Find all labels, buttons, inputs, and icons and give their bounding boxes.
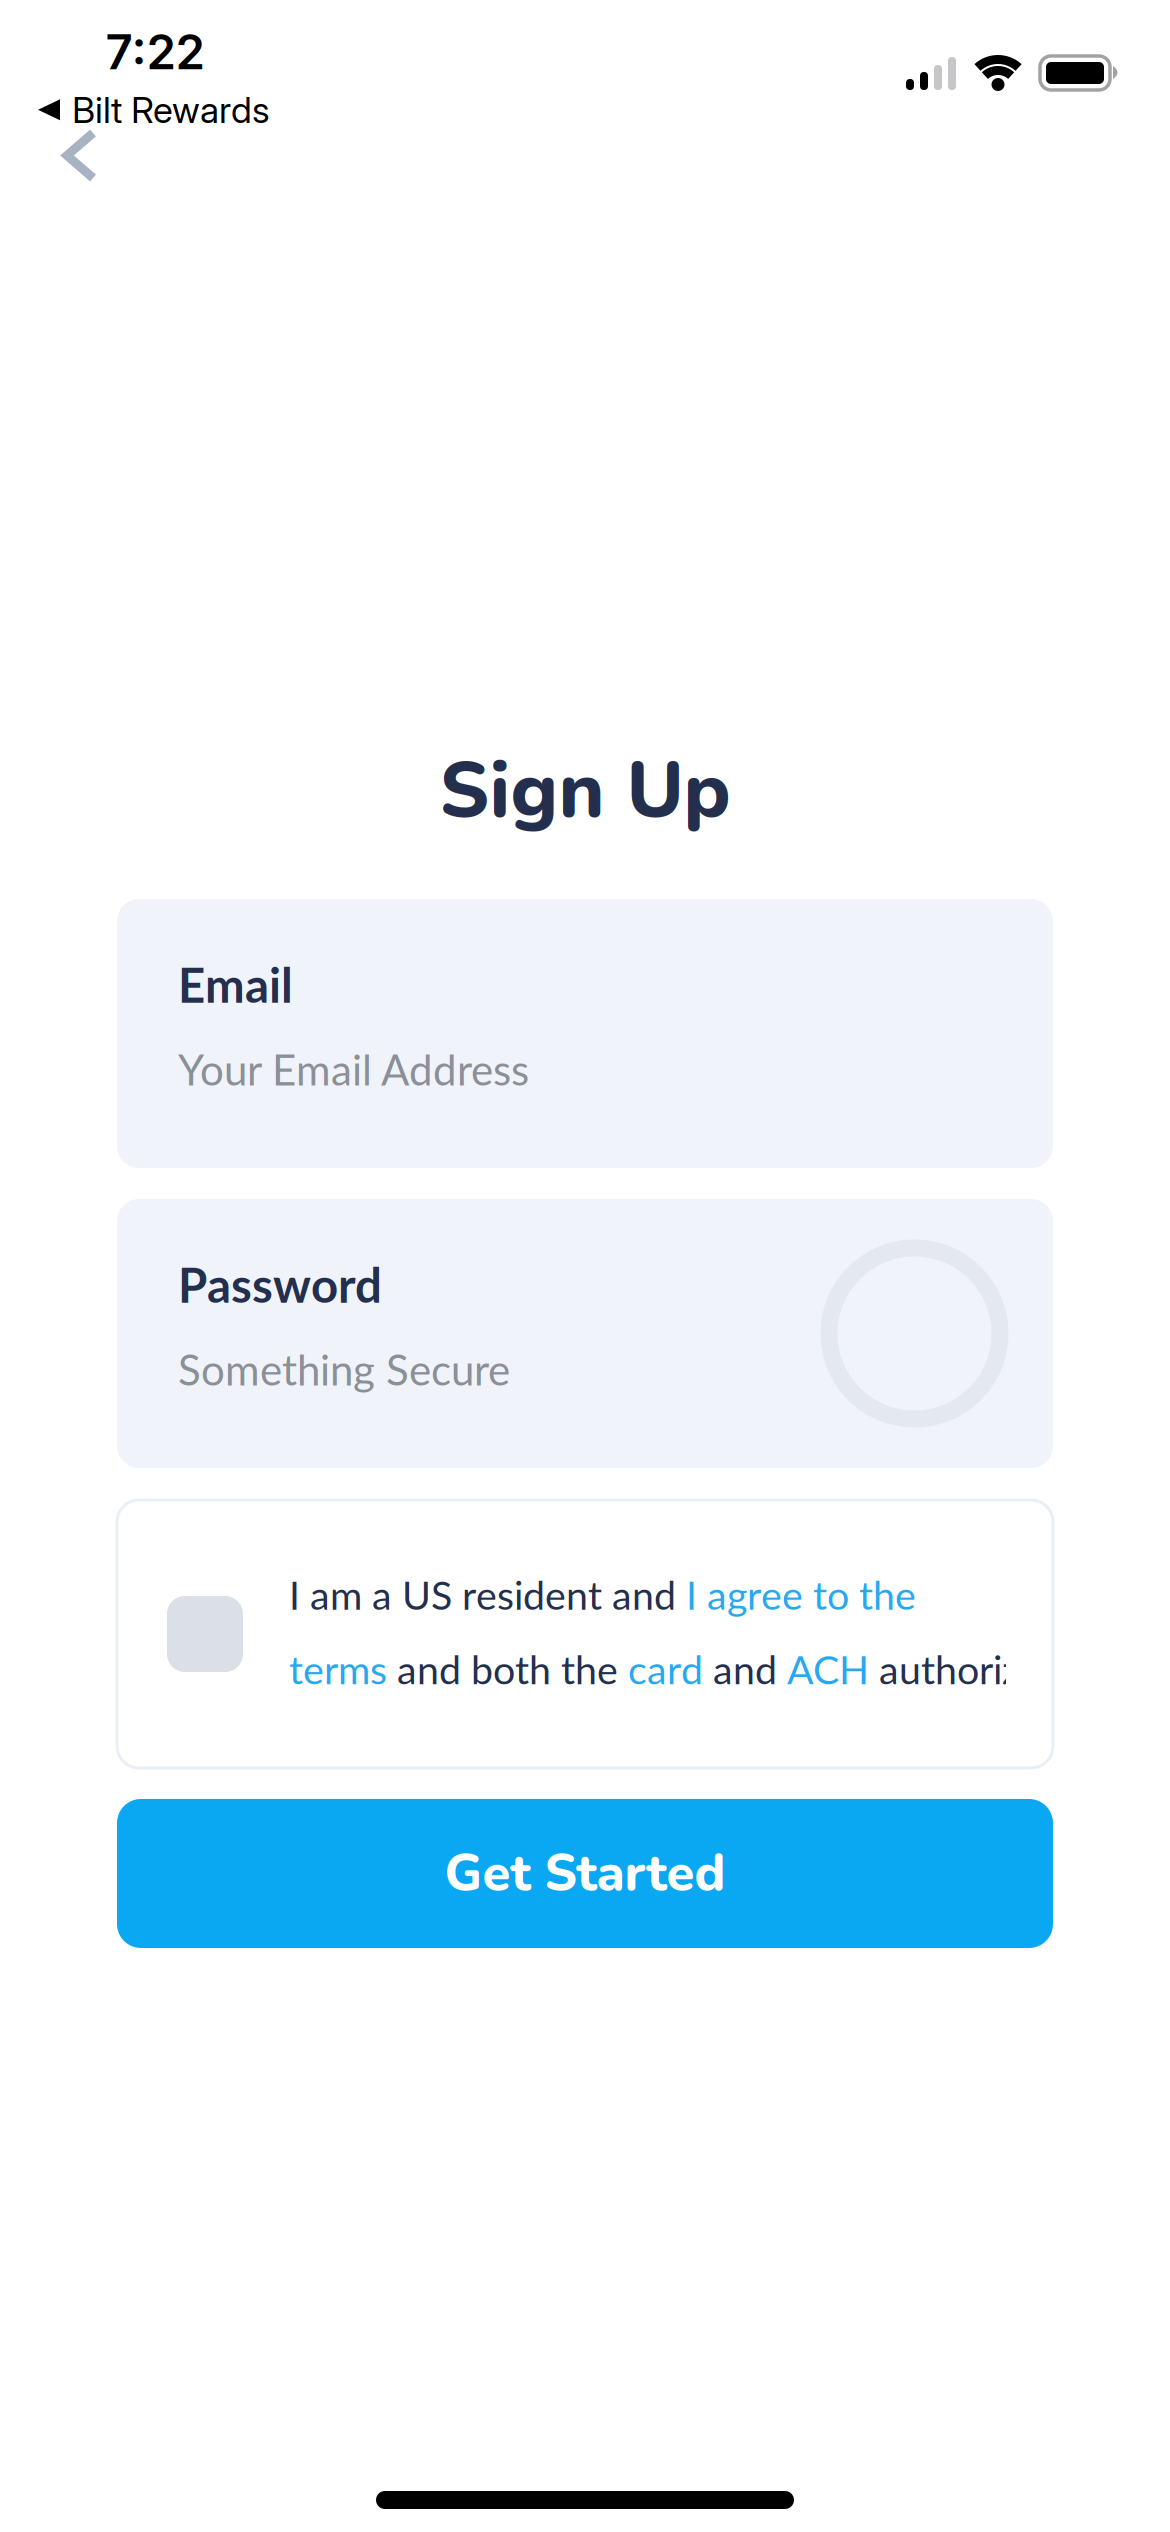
button[interactable]: I agree to the — [686, 1571, 916, 1618]
staticText: Sign Up — [439, 738, 730, 844]
staticText: terms — [289, 1645, 387, 1693]
staticText: Bilt Rewards — [72, 88, 270, 132]
button[interactable]: Email — [117, 899, 1053, 1168]
staticText: ACH — [787, 1645, 869, 1693]
button[interactable]: Back — [53, 119, 111, 193]
staticText: Email — [178, 956, 293, 1013]
button[interactable]: ACH — [787, 1645, 869, 1693]
staticText: and — [703, 1645, 787, 1693]
staticText: Your Email Address — [178, 1044, 529, 1094]
staticText: Get Started — [444, 1839, 725, 1908]
button[interactable]: Bilt Rewards — [38, 88, 270, 132]
staticText: I agree to the — [686, 1571, 916, 1618]
staticText: Password — [178, 1256, 382, 1313]
staticText: and both the — [387, 1645, 628, 1693]
staticText: card — [628, 1645, 703, 1693]
button[interactable]: Password — [117, 1199, 1053, 1468]
button[interactable]: Get Started — [117, 1799, 1053, 1948]
staticText: Something Secure — [178, 1344, 510, 1394]
button[interactable]: terms — [289, 1645, 387, 1693]
staticText: 7:22 — [105, 23, 204, 81]
button[interactable]: I agree to the terms — [167, 1596, 243, 1672]
staticText: authorization — [869, 1645, 1107, 1693]
staticText: I am a US resident and — [289, 1571, 686, 1618]
button[interactable]: card — [628, 1645, 703, 1693]
